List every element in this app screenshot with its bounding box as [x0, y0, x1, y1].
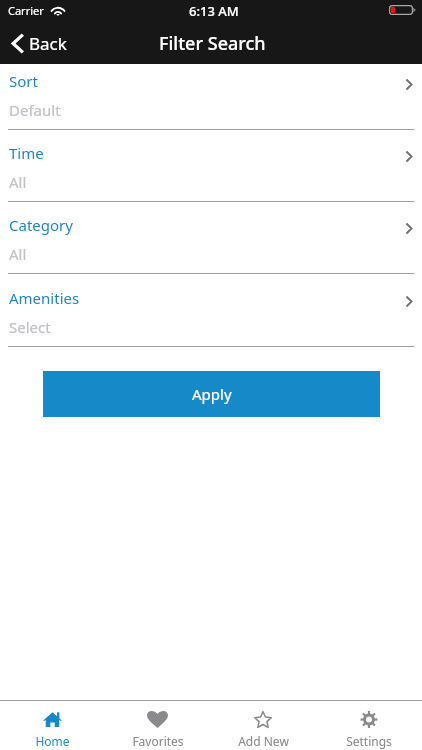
- button[interactable]: Back: [10, 22, 67, 64]
- button[interactable]: Category: [0, 201, 422, 273]
- button[interactable]: Favorites: [105, 701, 210, 750]
- staticText: All: [9, 244, 27, 264]
- staticText: Add New: [238, 733, 289, 749]
- button[interactable]: Settings: [316, 701, 422, 750]
- staticText: Sort: [9, 71, 38, 91]
- staticText: 6:13 AM: [189, 2, 239, 20]
- staticText: Back: [29, 32, 67, 55]
- staticText: Category: [9, 215, 73, 235]
- button[interactable]: Time: [0, 129, 422, 201]
- button[interactable]: Amenities: [0, 274, 422, 346]
- staticText: Select: [9, 317, 51, 337]
- staticText: Default: [9, 100, 61, 120]
- staticText: Home: [35, 733, 70, 749]
- staticText: Settings: [346, 733, 392, 749]
- staticText: All: [9, 172, 27, 192]
- staticText: Apply: [192, 384, 232, 404]
- button[interactable]: Add New: [210, 701, 316, 750]
- staticText: Filter Search: [159, 31, 266, 56]
- button[interactable]: Apply: [43, 371, 380, 417]
- button[interactable]: Sort: [0, 57, 422, 129]
- staticText: Time: [9, 143, 44, 163]
- button[interactable]: Home: [0, 701, 105, 750]
- staticText: Favorites: [132, 733, 184, 749]
- staticText: Amenities: [9, 288, 80, 308]
- staticText: Carrier: [8, 3, 44, 18]
